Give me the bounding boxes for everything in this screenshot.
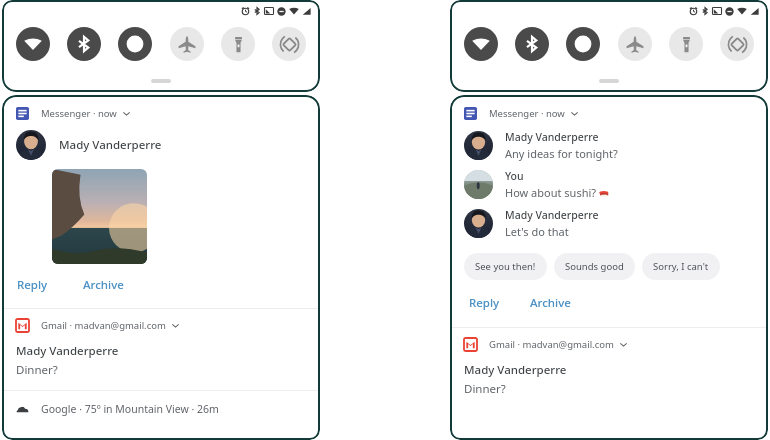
staticText: Any ideas for tonight? (505, 146, 618, 161)
button[interactable]: Mady Vanderperre (464, 208, 768, 239)
staticText: Let's do that (505, 224, 569, 239)
button[interactable]: Gmail · madvan@gmail.com (2, 309, 320, 390)
button[interactable]: Wi-Fi (464, 27, 498, 61)
staticText: Mady Vanderperre (59, 137, 162, 153)
staticText: Dinner? (464, 381, 506, 397)
staticText: Sorry, I can't (653, 260, 709, 273)
button[interactable]: Bluetooth (67, 27, 101, 61)
staticText: Dinner? (16, 362, 58, 378)
button[interactable]: Wi-Fi (16, 27, 50, 61)
staticText: Archive (83, 277, 124, 293)
button[interactable]: Messenger · now (16, 107, 306, 120)
button[interactable]: Mady Vanderperre (464, 130, 768, 161)
staticText: Mady Vanderperre (505, 130, 599, 144)
button[interactable]: See you then! (464, 253, 547, 280)
staticText: Reply (17, 277, 48, 293)
button[interactable]: Flashlight (221, 27, 255, 61)
button[interactable]: Archive (529, 293, 572, 313)
staticText: Google · 75º in Mountain View · 26m (41, 402, 219, 416)
button[interactable]: Gmail · madvan@gmail.com (464, 338, 754, 351)
button[interactable]: Sorry, I can't (642, 253, 720, 280)
button[interactable]: Archive (82, 275, 125, 295)
button[interactable]: Reply (16, 275, 49, 295)
button[interactable]: Airplane mode (618, 27, 652, 61)
button[interactable]: Flashlight (669, 27, 703, 61)
button[interactable]: Airplane mode (170, 27, 204, 61)
staticText: See you then! (475, 260, 536, 273)
staticText: Gmail · madvan@gmail.com (489, 338, 614, 351)
staticText: Messenger · now (41, 107, 117, 120)
staticText: Reply (469, 295, 500, 311)
button[interactable]: Do not disturb (566, 27, 600, 61)
staticText: Mady Vanderperre (505, 208, 599, 222)
staticText: Gmail · madvan@gmail.com (41, 319, 166, 332)
staticText: Messenger · now (489, 107, 565, 120)
staticText: How about sushi? (505, 185, 597, 200)
button[interactable]: Gmail · madvan@gmail.com (450, 328, 768, 409)
button[interactable]: You (464, 169, 768, 200)
button[interactable]: Auto rotate (720, 27, 754, 61)
staticText: Mady Vanderperre (464, 362, 567, 378)
staticText: Sounds good (565, 260, 624, 273)
button[interactable]: Do not disturb (118, 27, 152, 61)
button[interactable]: Messenger · now (2, 105, 320, 308)
button[interactable]: Reply (468, 293, 501, 313)
button[interactable]: Sounds good (554, 253, 635, 280)
staticText: Archive (530, 295, 571, 311)
button[interactable]: Bluetooth (515, 27, 549, 61)
staticText: Mady Vanderperre (16, 343, 119, 359)
staticText: You (505, 169, 524, 183)
button[interactable]: Auto rotate (272, 27, 306, 61)
button[interactable]: Gmail · madvan@gmail.com (16, 319, 306, 332)
button[interactable]: Messenger · now (464, 107, 754, 120)
button[interactable]: Google · 75º in Mountain View · 26m (2, 391, 320, 427)
